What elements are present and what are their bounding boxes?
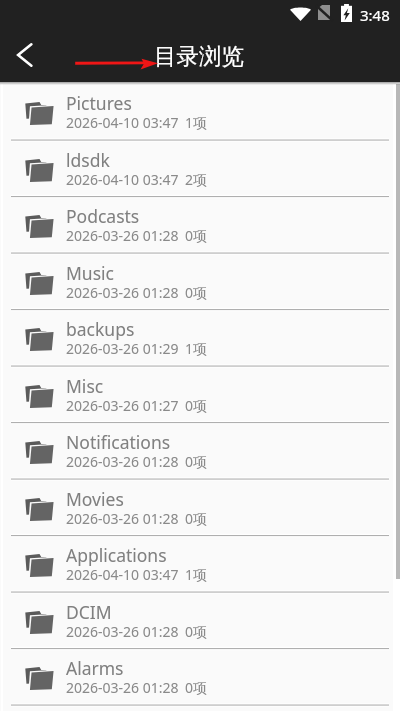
button[interactable]: Applications (0, 536, 400, 593)
button[interactable]: ldsdk (0, 141, 400, 198)
staticText: 2026-03-26 01:28 (66, 283, 179, 302)
button[interactable]: Movies (0, 480, 400, 537)
staticText: 2026-03-26 01:27 (66, 396, 179, 415)
staticText: Notifications (66, 430, 171, 454)
button[interactable]: Pictures (0, 84, 400, 141)
button[interactable]: Podcasts (0, 197, 400, 254)
staticText: 1项 (185, 339, 208, 358)
staticText: 2026-03-26 01:28 (66, 226, 179, 245)
button[interactable]: Misc (0, 367, 400, 424)
staticText: DCIM (66, 600, 112, 624)
staticText: backups (66, 317, 135, 341)
staticText: 0项 (185, 452, 208, 471)
staticText: 2026-04-10 03:47 (66, 565, 179, 584)
button[interactable]: backups (0, 310, 400, 367)
staticText: Pictures (66, 91, 132, 115)
staticText: 0项 (185, 622, 208, 641)
staticText: 1项 (185, 113, 208, 132)
staticText: 2026-04-10 03:47 (66, 113, 179, 132)
staticText: Applications (66, 543, 167, 567)
button[interactable]: DCIM (0, 593, 400, 650)
staticText: 2026-03-26 01:28 (66, 509, 179, 528)
button[interactable]: Back (3, 33, 47, 77)
staticText: 1项 (185, 565, 208, 584)
staticText: Movies (66, 487, 124, 511)
staticText: 0项 (185, 283, 208, 302)
staticText: Alarms (66, 656, 124, 680)
staticText: 目录浏览 (154, 42, 244, 70)
button[interactable]: Alarms (0, 649, 400, 706)
staticText: 3:48 (360, 5, 390, 25)
staticText: 2026-04-10 03:47 (66, 170, 179, 189)
staticText: 2026-03-26 01:28 (66, 452, 179, 471)
staticText: 2项 (185, 170, 208, 189)
button[interactable]: Notifications (0, 423, 400, 480)
staticText: 0项 (185, 678, 208, 697)
staticText: Podcasts (66, 204, 140, 228)
staticText: Misc (66, 374, 104, 398)
staticText: 2026-03-26 01:29 (66, 339, 179, 358)
staticText: Music (66, 261, 114, 285)
staticText: 0项 (185, 509, 208, 528)
button[interactable]: Music (0, 254, 400, 311)
staticText: 0项 (185, 226, 208, 245)
staticText: 2026-03-26 01:28 (66, 622, 179, 641)
staticText: 0项 (185, 396, 208, 415)
staticText: ldsdk (66, 148, 110, 172)
staticText: 2026-03-26 01:28 (66, 678, 179, 697)
